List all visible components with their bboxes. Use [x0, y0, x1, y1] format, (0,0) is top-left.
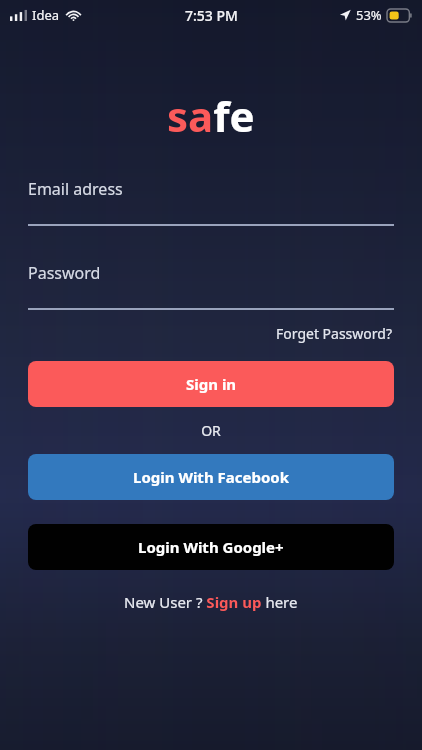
- staticText: Idea: [32, 6, 60, 24]
- staticText: OR: [28, 421, 394, 440]
- staticText: safe: [167, 87, 255, 144]
- button[interactable]: Sign in: [28, 361, 394, 407]
- staticText: Forget Password?: [276, 324, 392, 343]
- button[interactable]: Login With Google+: [28, 524, 394, 570]
- staticText: Login With Facebook: [133, 467, 289, 487]
- button[interactable]: Login With Facebook: [28, 454, 394, 500]
- staticText: Login With Google+: [138, 537, 284, 557]
- button[interactable]: Forget Password?: [274, 322, 394, 345]
- staticText: Sign in: [186, 374, 237, 394]
- staticText: Email adress: [28, 178, 123, 200]
- staticText: Password: [28, 262, 101, 284]
- staticText: New User ? Sign up here: [124, 592, 298, 612]
- staticText: 53%: [356, 6, 382, 24]
- staticText: 7:53 PM: [185, 6, 238, 25]
- button[interactable]: New User ? Sign up here: [28, 592, 394, 612]
